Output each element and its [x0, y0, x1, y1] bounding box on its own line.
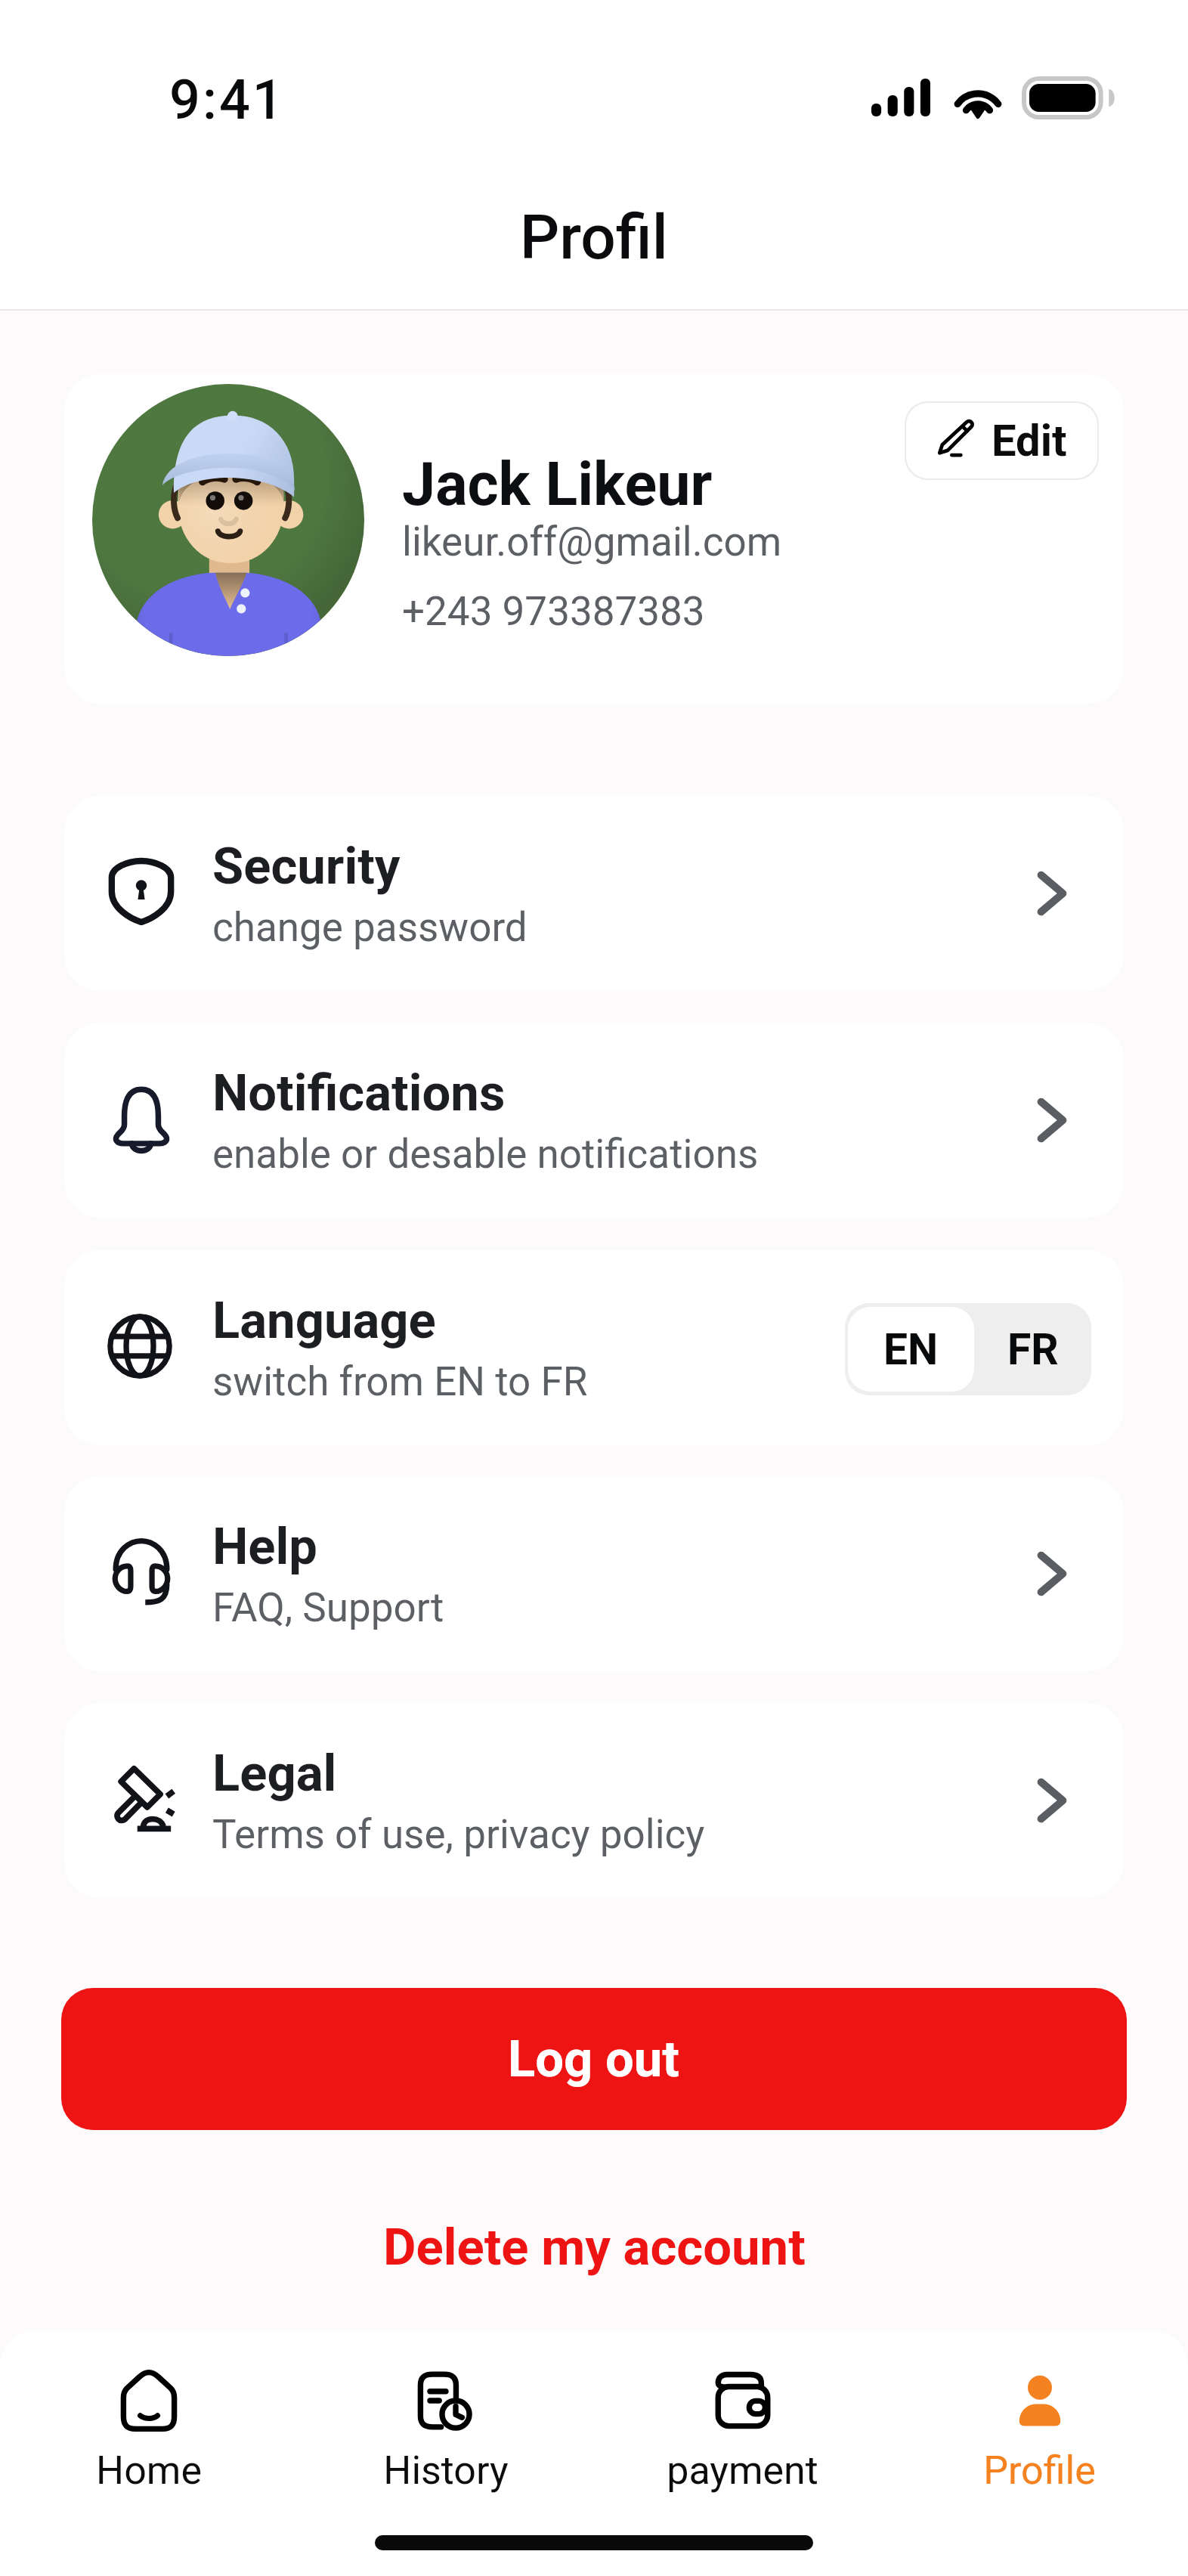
button[interactable]: Language: [64, 1250, 1124, 1445]
staticText: Notifications: [212, 1064, 506, 1123]
staticText: Home: [96, 2448, 202, 2494]
button[interactable]: Delete my account: [360, 2204, 828, 2291]
staticText: switch from EN to FR: [212, 1358, 588, 1405]
button[interactable]: payment: [594, 2330, 891, 2504]
staticText: Terms of use, privacy policy: [212, 1811, 705, 1858]
staticText: 9:41: [169, 68, 286, 132]
staticText: Help: [212, 1517, 317, 1577]
button[interactable]: FR: [974, 1303, 1091, 1395]
staticText: History: [383, 2448, 509, 2494]
staticText: Profil: [520, 201, 668, 274]
button[interactable]: Security: [64, 796, 1124, 991]
button[interactable]: Jack Likeur: [64, 374, 1124, 704]
staticText: Legal: [212, 1744, 337, 1804]
button[interactable]: EN: [848, 1307, 974, 1392]
staticText: Log out: [508, 2030, 680, 2089]
staticText: EN: [883, 1324, 939, 1375]
button[interactable]: Edit: [906, 403, 1097, 478]
staticText: Language: [212, 1291, 436, 1351]
staticText: Delete my account: [383, 2218, 806, 2277]
other: History: [414, 2369, 478, 2432]
staticText: likeur.off@gmail.com: [402, 519, 782, 565]
button[interactable]: Help: [64, 1476, 1124, 1671]
button[interactable]: Legal: [64, 1703, 1124, 1898]
staticText: +243 973387383: [402, 588, 705, 635]
button[interactable]: Log out: [61, 1988, 1127, 2130]
staticText: payment: [667, 2448, 818, 2494]
staticText: FR: [1007, 1324, 1059, 1375]
other: Home: [117, 2369, 181, 2432]
staticText: Jack Likeur: [402, 450, 713, 520]
other: payment: [711, 2369, 775, 2432]
button[interactable]: Profile: [891, 2330, 1188, 2504]
staticText: change password: [212, 904, 527, 951]
button[interactable]: Notifications: [64, 1023, 1124, 1218]
staticText: Security: [212, 837, 401, 896]
button[interactable]: History: [297, 2330, 594, 2504]
button[interactable]: Home: [0, 2330, 297, 2504]
other: Profile: [1008, 2369, 1072, 2432]
staticText: Edit: [992, 415, 1067, 466]
staticText: enable or desable notifications: [212, 1131, 759, 1178]
staticText: FAQ, Support: [212, 1584, 444, 1631]
staticText: Profile: [983, 2448, 1096, 2494]
